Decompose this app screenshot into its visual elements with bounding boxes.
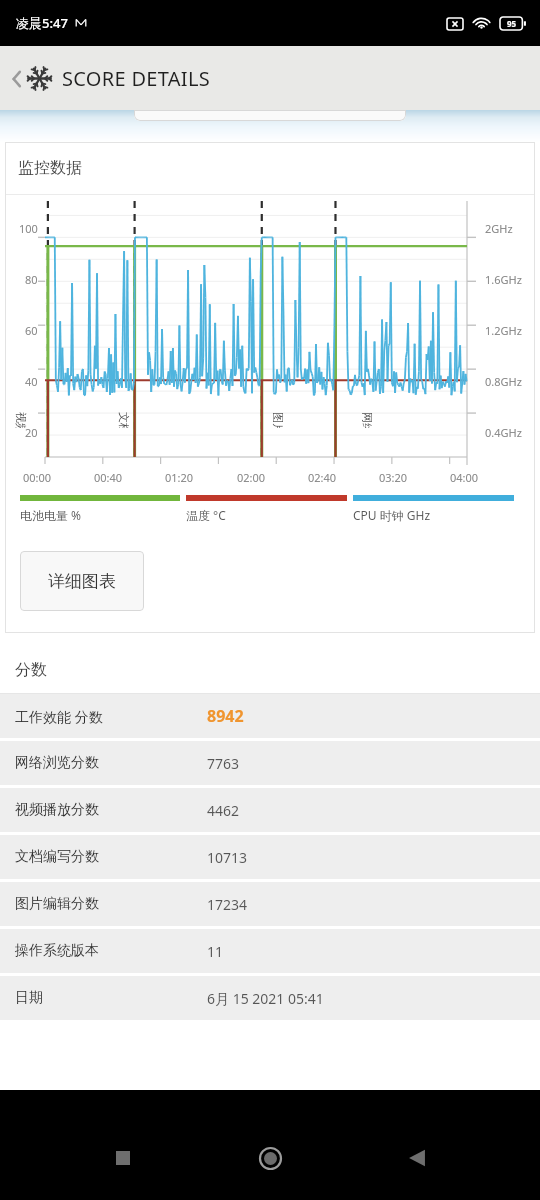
staticText: 40 [25, 374, 38, 389]
button[interactable]: 详细图表 [20, 551, 144, 611]
staticText: 工作效能 分数 [15, 707, 103, 726]
staticText: 11 [207, 942, 224, 961]
staticText: 图片编辑分数 [15, 895, 99, 913]
staticText: 04:00 [450, 470, 479, 485]
staticText: 详细图表 [48, 571, 116, 592]
staticText: 6月 15 2021 05:41 [207, 989, 324, 1008]
staticText: CPU 时钟 GHz [353, 507, 431, 523]
staticText: 操作系统版本 [15, 942, 99, 960]
staticText: 95 [507, 18, 517, 29]
staticText: 4462 [207, 801, 240, 820]
button[interactable]: 视频播放分数 [0, 788, 540, 835]
button[interactable]: 文档编写分数 [0, 835, 540, 882]
button[interactable]: 图片编辑分数 [0, 882, 540, 929]
staticText: 8942 [207, 705, 244, 727]
button[interactable]: 操作系统版本 [0, 929, 540, 976]
button[interactable]: Back — Score details [4, 65, 218, 92]
staticText: 1.6GHz [485, 272, 522, 287]
staticText: 03:20 [379, 470, 408, 485]
staticText: 17234 [207, 895, 248, 914]
staticText: 02:40 [308, 470, 337, 485]
button[interactable]: 网络浏览分数 [0, 741, 540, 788]
staticText: 温度 °C [186, 507, 226, 523]
staticText: 监控数据 [18, 158, 82, 178]
staticText: 20 [25, 425, 38, 440]
staticText: 文档编写分数 [15, 848, 99, 866]
staticText: 60 [25, 323, 38, 338]
staticText: 凌晨5:47 [16, 14, 68, 32]
staticText: 网络浏览分数 [15, 754, 99, 772]
staticText: 网络浏览 [360, 412, 374, 428]
staticText: 02:00 [237, 470, 266, 485]
staticText: 0.8GHz [485, 374, 522, 389]
button[interactable]: Back [393, 1134, 441, 1182]
button[interactable]: 工作效能 分数 [0, 694, 540, 741]
staticText: SCORE DETAILS [62, 65, 210, 92]
staticText: 视频播放分数 [15, 801, 99, 819]
staticText: 00:00 [23, 470, 52, 485]
button[interactable]: Home [246, 1134, 294, 1182]
staticText: 80 [25, 272, 38, 287]
staticText: 7763 [207, 754, 240, 773]
staticText: 文档编写 [117, 412, 131, 428]
staticText: 日期 [15, 989, 43, 1007]
staticText: 01:20 [165, 470, 194, 485]
staticText: 电池电量 % [20, 507, 82, 523]
staticText: 2GHz [485, 221, 513, 236]
staticText: 10713 [207, 848, 248, 867]
staticText: 视频播放 [14, 412, 28, 428]
staticText: 100 [19, 221, 38, 236]
staticText: 分数 [15, 660, 47, 680]
button[interactable]: 日期 [0, 976, 540, 1023]
staticText: 1.2GHz [485, 323, 522, 338]
button[interactable]: Recent apps [99, 1134, 147, 1182]
staticText: 0.4GHz [485, 425, 522, 440]
staticText: 图片编辑 [271, 412, 285, 428]
staticText: 00:40 [94, 470, 123, 485]
